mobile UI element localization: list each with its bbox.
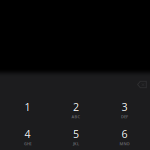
staticText: 6 — [121, 127, 127, 141]
button[interactable]: 3 — [100, 96, 149, 123]
button[interactable]: Delete — [137, 80, 150, 88]
staticText: 4 — [24, 127, 30, 141]
button[interactable]: 6 — [100, 123, 149, 150]
staticText: 2 — [73, 100, 79, 114]
staticText: DEF — [121, 114, 128, 119]
button[interactable]: 2 — [52, 96, 100, 123]
staticText: 5 — [73, 127, 79, 141]
staticText: ABC — [71, 114, 80, 119]
staticText: JKL — [73, 141, 79, 146]
staticText: MNO — [119, 141, 129, 146]
staticText: 3 — [121, 100, 127, 114]
button[interactable]: 5 — [52, 123, 100, 150]
button[interactable]: 1 — [3, 96, 52, 123]
staticText: 1 — [24, 100, 30, 114]
button[interactable]: 4 — [3, 123, 52, 150]
staticText: GHI — [24, 141, 31, 146]
